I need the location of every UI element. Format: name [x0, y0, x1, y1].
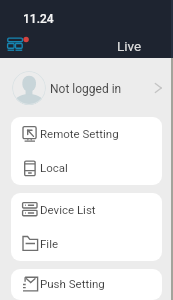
staticText: Live: [117, 38, 142, 54]
button[interactable]: Push Setting: [11, 269, 162, 300]
staticText: Local: [40, 161, 68, 174]
staticText: 11.24: [23, 12, 54, 26]
staticText: Not logged in: [50, 82, 122, 96]
button[interactable]: Remote Setting: [11, 117, 162, 151]
staticText: Push Setting: [40, 277, 105, 290]
button[interactable]: Not logged in: [0, 58, 173, 117]
button[interactable]: Local: [11, 151, 162, 185]
button[interactable]: Device List: [11, 193, 162, 227]
staticText: Device List: [40, 203, 96, 216]
button[interactable]: Dashboard: [5, 33, 31, 53]
staticText: File: [40, 237, 59, 250]
staticText: Remote Setting: [40, 127, 119, 140]
button[interactable]: File: [11, 227, 162, 261]
